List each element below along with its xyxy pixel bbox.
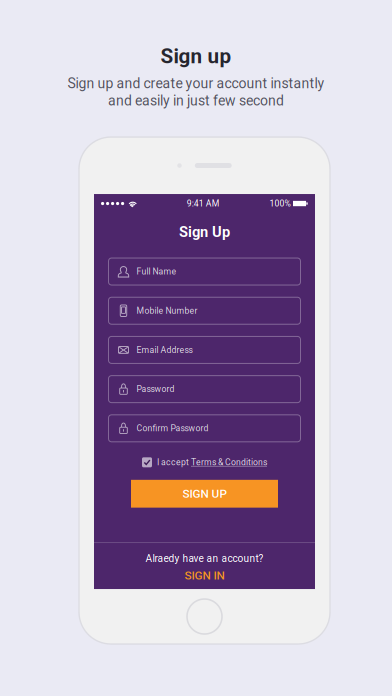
button[interactable]: Mobile Number <box>108 297 300 324</box>
staticText: I accept <box>157 457 191 467</box>
staticText: Alraedy have an account? <box>145 553 263 565</box>
button[interactable]: SIGN IN <box>184 565 224 582</box>
button[interactable]: Email Address <box>108 336 300 363</box>
staticText: 100% <box>269 198 290 209</box>
button[interactable]: Full Name <box>108 258 300 285</box>
staticText: Sign Up <box>179 223 230 241</box>
staticText: 9:41 AM <box>187 198 220 209</box>
staticText: Terms & Conditions <box>191 457 267 467</box>
button[interactable]: Confirm Password <box>108 415 300 442</box>
staticText: Sign up and create your account instantl… <box>67 75 324 92</box>
staticText: Confirm Password <box>136 423 208 433</box>
button[interactable]: SIGN UP <box>131 480 278 508</box>
staticText: and easily in just few second <box>108 93 284 109</box>
staticText: Email Address <box>136 345 192 355</box>
button[interactable]: Password <box>108 376 300 403</box>
staticText: Password <box>136 384 174 394</box>
staticText: SIGN UP <box>182 487 226 501</box>
staticText: Mobile Number <box>136 306 197 316</box>
staticText: SIGN IN <box>184 569 224 582</box>
staticText: Sign up <box>160 44 231 68</box>
button[interactable]: I accept <box>142 451 267 474</box>
staticText: Full Name <box>136 266 176 277</box>
